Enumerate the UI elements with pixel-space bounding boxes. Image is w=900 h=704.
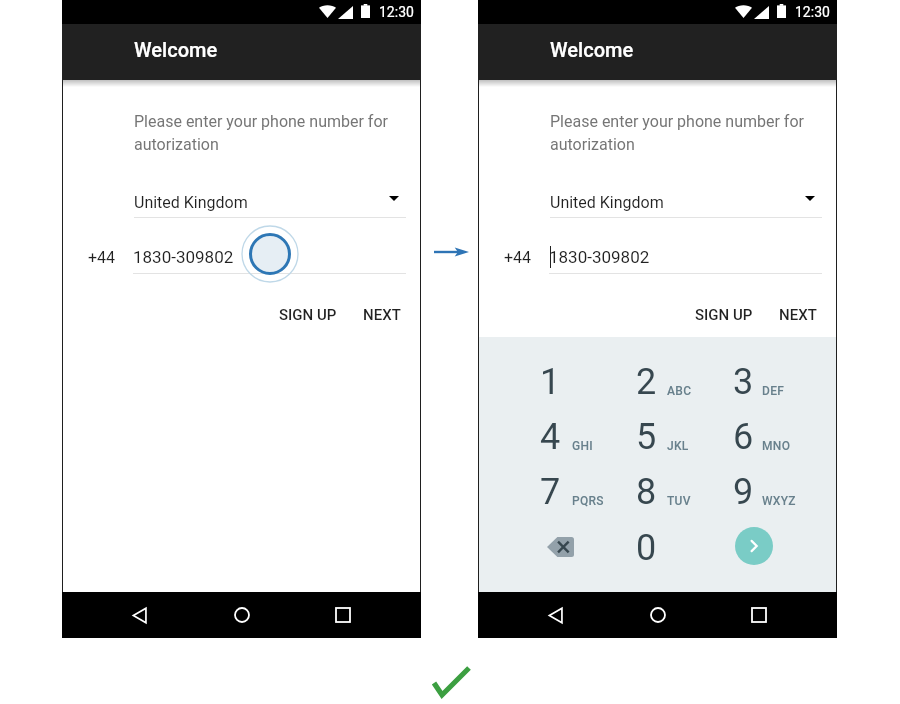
staticText: DEF <box>762 384 785 398</box>
staticText: 12:30 <box>379 4 414 20</box>
staticText: 0 <box>598 527 694 569</box>
staticText: 2 <box>598 361 694 403</box>
staticText: JKL <box>667 439 689 453</box>
button[interactable]: Recent apps <box>320 592 366 638</box>
staticText: Welcome <box>134 38 218 61</box>
staticText: NEXT <box>779 306 817 324</box>
button[interactable]: 1830-309802 <box>133 240 406 274</box>
button[interactable]: SIGN UP <box>271 300 345 330</box>
button[interactable]: 9 <box>695 462 791 524</box>
button[interactable]: 1830-309802 <box>549 240 822 274</box>
button[interactable]: 2 <box>598 352 694 414</box>
staticText: GHI <box>572 439 593 453</box>
staticText: United Kingdom <box>550 193 664 212</box>
staticText: PQRS <box>572 494 604 508</box>
staticText: 9 <box>695 471 791 513</box>
button[interactable]: SIGN UP <box>687 300 761 330</box>
staticText: 8 <box>598 471 694 513</box>
staticText: SIGN UP <box>695 306 753 324</box>
button[interactable]: United Kingdom <box>134 186 406 218</box>
staticText: SIGN UP <box>279 306 337 324</box>
staticText: WXYZ <box>762 494 796 508</box>
staticText: 1830-309802 <box>133 247 234 267</box>
button[interactable]: 1 <box>502 352 598 414</box>
staticText: MNO <box>762 439 791 453</box>
staticText: 6 <box>695 416 791 458</box>
staticText: NEXT <box>363 306 401 324</box>
staticText: ABC <box>667 384 692 398</box>
button[interactable]: 4 <box>502 407 598 469</box>
button[interactable]: Backspace <box>514 515 606 579</box>
staticText: +44 <box>504 248 532 267</box>
button[interactable]: United Kingdom <box>550 186 822 218</box>
button[interactable]: 7 <box>502 462 598 524</box>
button[interactable]: Home <box>219 592 265 638</box>
button[interactable]: NEXT <box>355 300 409 330</box>
button[interactable]: Back <box>117 592 163 638</box>
staticText: 12:30 <box>795 4 830 20</box>
staticText: Please enter your phone number for autor… <box>550 112 804 154</box>
staticText: United Kingdom <box>134 193 248 212</box>
button[interactable]: Home <box>635 592 681 638</box>
staticText: +44 <box>88 248 116 267</box>
button[interactable]: NEXT <box>771 300 825 330</box>
staticText: 5 <box>598 416 694 458</box>
staticText: 4 <box>502 416 598 458</box>
button[interactable]: Recent apps <box>736 592 782 638</box>
staticText: 1830-309802 <box>549 247 650 267</box>
staticText: Please enter your phone number for autor… <box>134 112 388 154</box>
staticText: 3 <box>695 361 791 403</box>
staticText: 7 <box>502 471 598 513</box>
staticText: TUV <box>667 494 691 508</box>
button[interactable]: 0 <box>598 518 694 580</box>
button[interactable]: 5 <box>598 407 694 469</box>
button[interactable]: 6 <box>695 407 791 469</box>
button[interactable]: Back <box>533 592 579 638</box>
button[interactable]: Submit <box>735 527 773 565</box>
staticText: Welcome <box>550 38 634 61</box>
staticText: 1 <box>502 361 598 403</box>
button[interactable]: 3 <box>695 352 791 414</box>
button[interactable]: 8 <box>598 462 694 524</box>
